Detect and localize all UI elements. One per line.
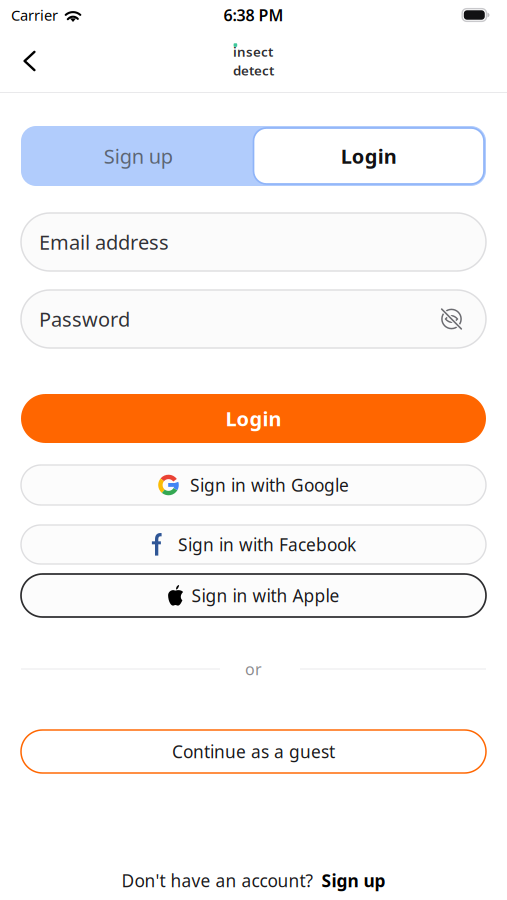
button[interactable]: Login	[253, 128, 484, 184]
button[interactable]: Back	[0, 39, 59, 83]
button[interactable]: Sign in with Google	[21, 465, 486, 505]
staticText: or	[245, 658, 262, 680]
staticText: Don't have an account?	[121, 869, 313, 892]
button[interactable]: Login	[21, 394, 486, 443]
staticText: Email address	[39, 229, 169, 255]
staticText: Password	[39, 306, 130, 332]
staticText: Login	[225, 405, 281, 432]
staticText: insect	[233, 43, 273, 60]
button[interactable]: Sign up	[321, 869, 385, 892]
staticText: Continue as a guest	[172, 740, 335, 763]
staticText: Sign in with Google	[190, 473, 349, 496]
button[interactable]: Sign up	[23, 128, 253, 184]
button[interactable]: Sign in with Facebook	[21, 525, 486, 564]
staticText: Login	[341, 143, 397, 169]
staticText: 6:38 PM	[223, 4, 283, 26]
button[interactable]: Show password	[434, 301, 470, 337]
button[interactable]: Continue as a guest	[21, 730, 486, 773]
staticText: Sign up	[321, 869, 385, 892]
button[interactable]: Sign in with Apple	[21, 574, 486, 617]
staticText: Carrier	[11, 5, 58, 25]
staticText: Sign in with Facebook	[178, 533, 356, 556]
staticText: Sign up	[104, 143, 173, 169]
staticText: Sign in with Apple	[191, 584, 339, 607]
staticText: detect	[233, 61, 274, 79]
